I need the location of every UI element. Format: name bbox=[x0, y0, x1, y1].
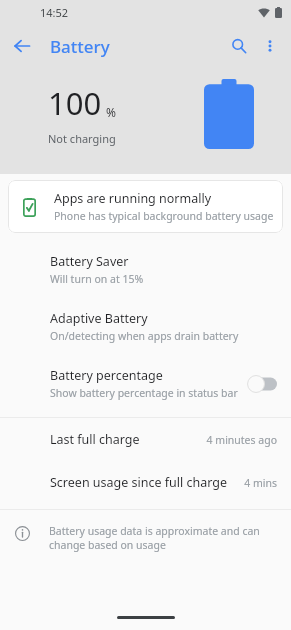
staticText: 14:52 bbox=[40, 5, 69, 20]
button[interactable]: Battery percentage bbox=[0, 355, 291, 412]
button[interactable]: Apps are running normally bbox=[8, 180, 283, 233]
staticText: Battery bbox=[50, 35, 110, 58]
staticText: Battery percentage bbox=[50, 367, 163, 384]
staticText: Battery Saver bbox=[50, 253, 129, 270]
button[interactable]: Screen usage since full charge bbox=[0, 461, 291, 504]
staticText: Will turn on at 15% bbox=[50, 272, 144, 286]
staticText: Screen usage since full charge bbox=[50, 474, 244, 491]
staticText: Not charging bbox=[48, 131, 116, 146]
staticText: % bbox=[106, 104, 116, 120]
staticText: Battery usage data is approximate and ca… bbox=[49, 524, 275, 552]
staticText: 100 bbox=[48, 82, 102, 124]
button[interactable]: Back bbox=[6, 30, 38, 62]
staticText: 4 minutes ago bbox=[206, 433, 277, 447]
button[interactable]: Search bbox=[223, 30, 255, 62]
staticText: 4 mins bbox=[244, 476, 277, 490]
staticText: Last full charge bbox=[50, 431, 206, 448]
staticText: Apps are running normally bbox=[54, 190, 212, 207]
button[interactable]: Battery percentage toggle bbox=[247, 375, 277, 393]
staticText: Adaptive Battery bbox=[50, 310, 148, 327]
button[interactable]: Battery Saver bbox=[0, 241, 291, 298]
staticText: On/detecting when apps drain battery bbox=[50, 329, 239, 343]
button[interactable]: Last full charge bbox=[0, 418, 291, 461]
staticText: Phone has typical background battery usa… bbox=[54, 209, 274, 223]
button[interactable]: Adaptive Battery bbox=[0, 298, 291, 355]
button[interactable]: More options bbox=[255, 31, 285, 61]
staticText: Show battery percentage in status bar bbox=[50, 386, 238, 400]
